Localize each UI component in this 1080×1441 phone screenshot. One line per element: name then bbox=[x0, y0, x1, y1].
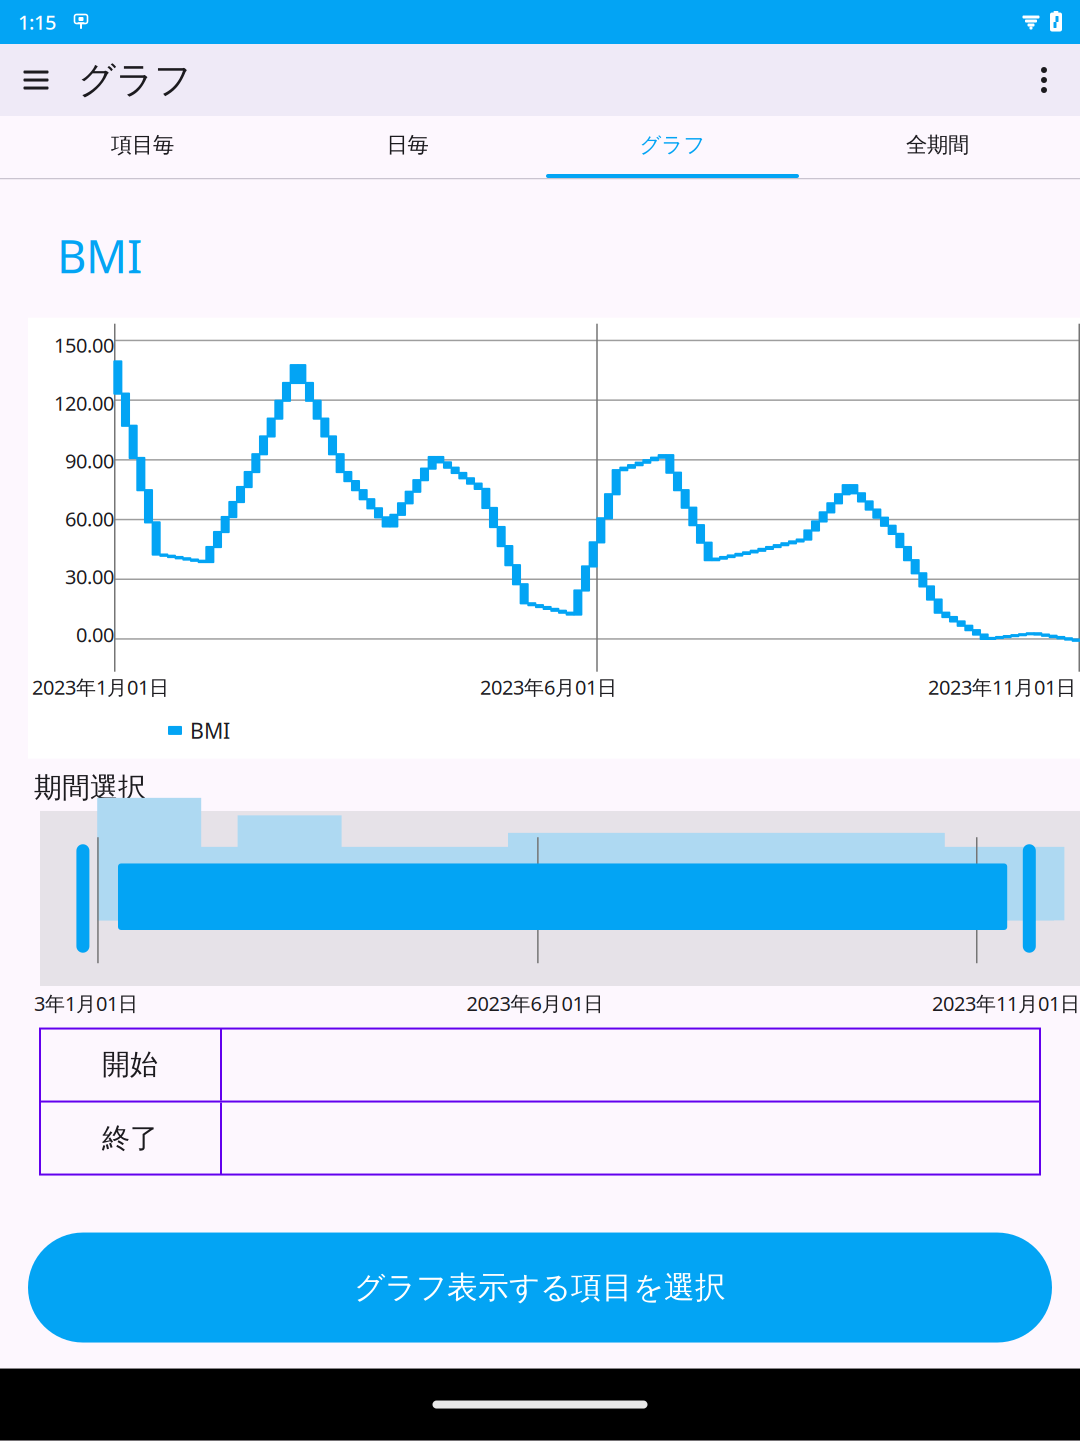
button[interactable]: 項目毎 bbox=[10, 116, 275, 178]
staticText: 0.00 bbox=[76, 621, 114, 648]
button[interactable]: Menu bbox=[12, 56, 60, 104]
button[interactable]: 全期間 bbox=[805, 116, 1070, 178]
staticText: 期間選択 bbox=[34, 771, 146, 805]
staticText: 90.00 bbox=[65, 447, 114, 474]
button[interactable]: More options bbox=[1020, 56, 1068, 104]
staticText: BMI bbox=[190, 716, 230, 745]
staticText: 2023年1月01日 bbox=[32, 674, 169, 700]
staticText: 1:15 bbox=[18, 9, 56, 35]
staticText: 開始 bbox=[102, 1047, 158, 1082]
staticText: 終了 bbox=[102, 1121, 158, 1156]
staticText: 150.00 bbox=[54, 332, 114, 358]
staticText: 60.00 bbox=[65, 505, 114, 532]
staticText: 2023年11月01日 bbox=[932, 990, 1080, 1017]
staticText: 2023年6月01日 bbox=[466, 990, 603, 1017]
button[interactable]: 終了 bbox=[40, 1102, 1040, 1174]
staticText: 2023年6月01日 bbox=[480, 674, 617, 700]
staticText: 2023年11月01日 bbox=[928, 674, 1076, 700]
staticText: グラフ bbox=[78, 57, 192, 103]
button[interactable]: 日毎 bbox=[275, 116, 540, 178]
button[interactable]: グラフ bbox=[540, 116, 805, 178]
button[interactable]: 開始 bbox=[40, 1028, 1040, 1100]
staticText: グラフ表示する項目を選択 bbox=[354, 1269, 726, 1306]
staticText: 30.00 bbox=[65, 563, 114, 590]
staticText: 全期間 bbox=[906, 132, 969, 158]
staticText: 日毎 bbox=[386, 132, 428, 158]
staticText: 項目毎 bbox=[111, 132, 174, 158]
staticText: BMI bbox=[57, 225, 142, 286]
staticText: 3年1月01日 bbox=[34, 990, 138, 1017]
button[interactable]: グラフ表示する項目を選択 bbox=[28, 1232, 1052, 1342]
staticText: グラフ bbox=[639, 132, 705, 158]
staticText: 120.00 bbox=[54, 390, 114, 416]
